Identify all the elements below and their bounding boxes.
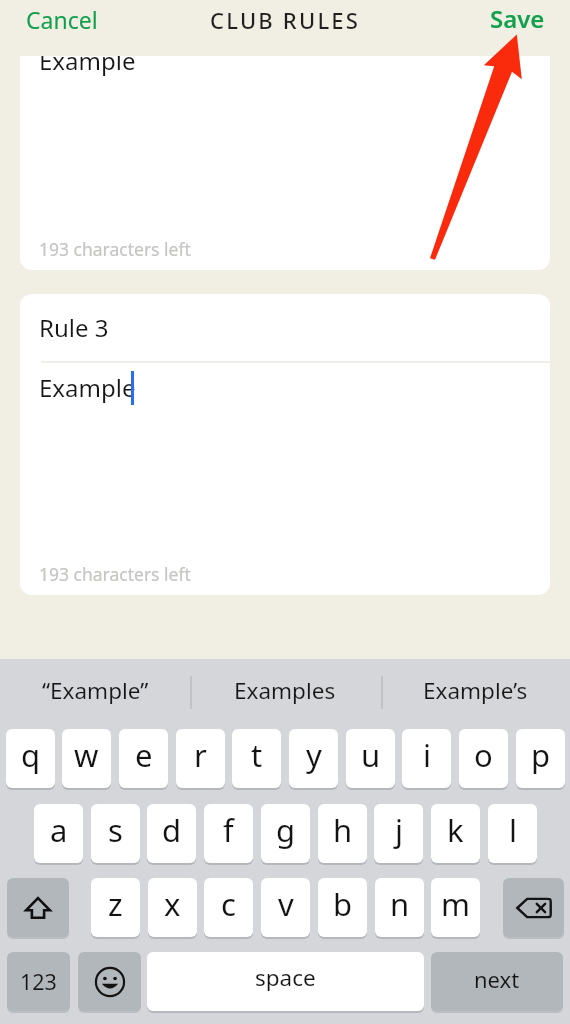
staticText: j bbox=[395, 809, 403, 851]
staticText: Rule 3 bbox=[39, 311, 109, 344]
button[interactable]: m bbox=[431, 878, 480, 937]
button[interactable]: u bbox=[346, 729, 395, 788]
staticText: g bbox=[276, 809, 296, 851]
staticText: 193 characters left bbox=[39, 562, 191, 586]
button[interactable]: Shift bbox=[7, 878, 69, 937]
staticText: x bbox=[164, 883, 181, 925]
staticText: Save bbox=[490, 2, 545, 35]
staticText: o bbox=[474, 734, 493, 776]
button[interactable]: d bbox=[147, 804, 196, 863]
button[interactable]: Backspace bbox=[503, 878, 564, 937]
staticText: b bbox=[333, 883, 353, 925]
button[interactable]: t bbox=[232, 729, 281, 788]
button[interactable]: o bbox=[459, 729, 508, 788]
staticText: “Example” bbox=[42, 675, 149, 706]
button[interactable]: j bbox=[374, 804, 423, 863]
staticText: q bbox=[21, 734, 41, 776]
button[interactable]: s bbox=[91, 804, 140, 863]
button[interactable]: g bbox=[261, 804, 310, 863]
staticText: s bbox=[108, 809, 123, 851]
staticText: 123 bbox=[20, 967, 57, 996]
staticText: z bbox=[108, 883, 123, 925]
staticText: t bbox=[251, 734, 263, 776]
staticText: v bbox=[278, 883, 294, 925]
staticText: h bbox=[333, 809, 353, 851]
staticText: Example’s bbox=[423, 675, 528, 706]
staticText: i bbox=[423, 734, 431, 776]
button[interactable]: space bbox=[147, 952, 424, 1011]
staticText: p bbox=[531, 734, 551, 776]
button[interactable]: n bbox=[375, 878, 424, 937]
button[interactable]: v bbox=[261, 878, 310, 937]
button[interactable]: y bbox=[289, 729, 338, 788]
staticText: u bbox=[361, 734, 381, 776]
staticText: w bbox=[74, 734, 99, 776]
staticText: l bbox=[509, 809, 517, 851]
staticText: d bbox=[162, 809, 182, 851]
staticText: m bbox=[441, 883, 470, 925]
button[interactable]: e bbox=[119, 729, 168, 788]
staticText: CLUB RULES bbox=[210, 5, 361, 35]
button[interactable]: Rule 3 bbox=[20, 294, 550, 595]
button[interactable]: c bbox=[204, 878, 253, 937]
button[interactable]: Emoji bbox=[78, 952, 141, 1011]
button[interactable]: w bbox=[62, 729, 111, 788]
button[interactable]: Cancel bbox=[14, 0, 110, 42]
staticText: c bbox=[221, 883, 236, 925]
button[interactable]: i bbox=[402, 729, 451, 788]
button[interactable]: z bbox=[91, 878, 140, 937]
button[interactable]: a bbox=[34, 804, 83, 863]
button[interactable]: Examples bbox=[190, 661, 380, 719]
button[interactable]: r bbox=[176, 729, 225, 788]
staticText: Example bbox=[39, 371, 136, 404]
button[interactable]: k bbox=[431, 804, 480, 863]
staticText: 193 characters left bbox=[39, 237, 191, 261]
staticText: next bbox=[474, 964, 520, 994]
button[interactable]: “Example” bbox=[0, 661, 190, 719]
staticText: r bbox=[194, 734, 207, 776]
staticText: Example bbox=[39, 56, 136, 77]
staticText: space bbox=[255, 962, 316, 993]
button[interactable]: p bbox=[516, 729, 565, 788]
staticText: e bbox=[135, 734, 153, 776]
button[interactable]: next bbox=[431, 952, 563, 1011]
button[interactable]: f bbox=[204, 804, 253, 863]
button[interactable]: l bbox=[488, 804, 537, 863]
staticText: k bbox=[447, 809, 464, 851]
button[interactable]: b bbox=[318, 878, 367, 937]
staticText: n bbox=[390, 883, 410, 925]
button[interactable]: q bbox=[6, 729, 55, 788]
button[interactable]: x bbox=[148, 878, 197, 937]
staticText: a bbox=[50, 809, 68, 851]
button[interactable]: Save bbox=[478, 0, 557, 41]
staticText: Cancel bbox=[26, 4, 98, 35]
button[interactable]: Example bbox=[20, 56, 550, 270]
staticText: f bbox=[223, 809, 234, 851]
button[interactable]: h bbox=[318, 804, 367, 863]
button[interactable]: 123 bbox=[7, 952, 70, 1011]
staticText: y bbox=[306, 734, 322, 776]
staticText: Examples bbox=[234, 675, 336, 706]
button[interactable]: Example’s bbox=[380, 661, 570, 719]
